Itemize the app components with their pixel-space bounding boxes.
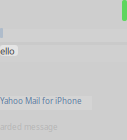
staticText: arded message: [0, 122, 58, 132]
staticText: ello: [0, 45, 15, 57]
staticText: Yahoo Mail for iPhone: [0, 96, 82, 106]
